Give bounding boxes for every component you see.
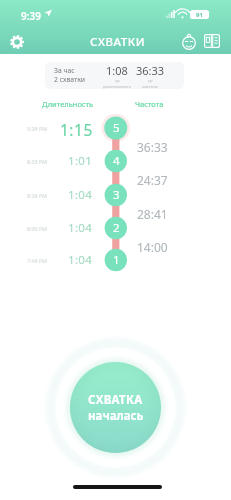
button[interactable]: СХВАТКА xyxy=(70,362,161,453)
staticText: 8:53 PM xyxy=(27,158,48,165)
staticText: 36:33 xyxy=(136,63,165,78)
staticText: 28:41 xyxy=(137,206,168,222)
staticText: За час xyxy=(54,66,75,75)
staticText: Длительность xyxy=(42,99,94,109)
staticText: 9:39 xyxy=(21,9,41,23)
button[interactable]: За час xyxy=(45,62,184,89)
staticText: 1:15 xyxy=(60,119,93,137)
staticText: длительность xyxy=(103,84,132,89)
staticText: 2 xyxy=(113,220,120,236)
staticText: СХВАТКИ xyxy=(90,34,146,50)
button[interactable] xyxy=(20,113,210,143)
staticText: 8:26 PM xyxy=(27,192,48,199)
button[interactable] xyxy=(20,245,210,275)
staticText: 3 xyxy=(113,187,120,203)
staticText: 1 xyxy=(113,252,120,268)
staticText: 1:04 xyxy=(68,187,93,203)
staticText: 14:00 xyxy=(137,239,168,255)
staticText: 7:46 PM xyxy=(27,257,48,264)
staticText: 36:33 xyxy=(137,139,168,155)
staticText: 91 xyxy=(196,11,203,19)
button[interactable] xyxy=(20,146,210,176)
staticText: 5 xyxy=(113,120,120,136)
staticText: 1:04 xyxy=(68,252,93,268)
button[interactable] xyxy=(20,180,210,210)
staticText: началась xyxy=(88,408,144,424)
staticText: 4 xyxy=(113,153,120,169)
button[interactable]: Journal xyxy=(201,30,223,52)
staticText: ср xyxy=(148,78,153,84)
staticText: 9:29 PM xyxy=(27,125,48,132)
button[interactable]: Settings xyxy=(5,30,29,54)
staticText: 8:00 PM xyxy=(27,225,48,232)
button[interactable]: Baby xyxy=(177,30,200,53)
button[interactable] xyxy=(20,213,210,243)
staticText: 24:37 xyxy=(137,172,168,188)
staticText: СХВАТКА xyxy=(88,392,143,408)
staticText: Частота xyxy=(135,99,164,109)
staticText: ср xyxy=(115,78,120,84)
staticText: 2 схватки xyxy=(54,75,86,84)
staticText: 1:04 xyxy=(68,220,93,236)
staticText: 1:08 xyxy=(106,63,128,78)
staticText: 1:01 xyxy=(68,153,93,169)
staticText: частота xyxy=(142,84,158,89)
